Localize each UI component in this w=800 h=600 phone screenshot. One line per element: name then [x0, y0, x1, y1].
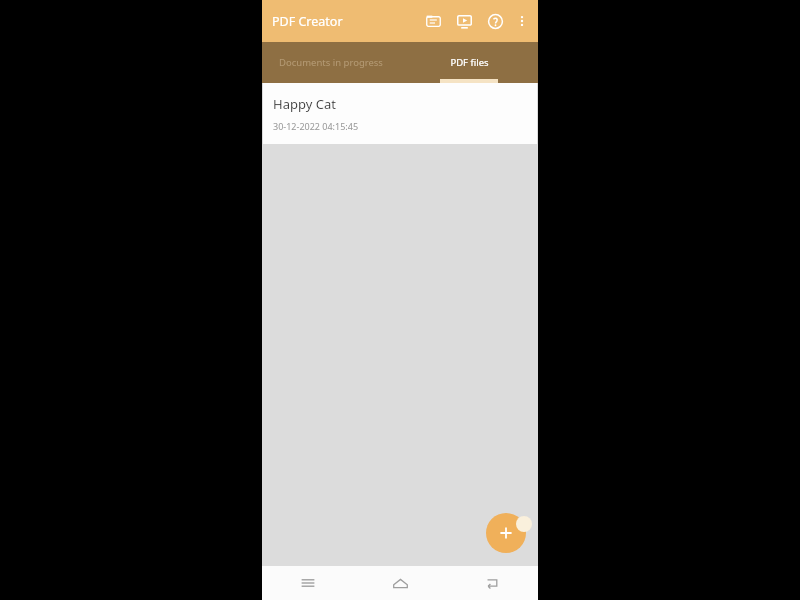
button[interactable]: Video tutorial — [451, 8, 477, 34]
staticText: 30-12-2022 04:15:45 — [273, 120, 359, 132]
button[interactable]: Home — [354, 566, 446, 600]
staticText: Documents in progress — [279, 56, 383, 69]
button[interactable]: Recent apps — [262, 566, 354, 600]
button[interactable]: Help — [482, 8, 508, 34]
button[interactable]: Create new PDF — [486, 513, 526, 553]
staticText: Happy Cat — [273, 95, 336, 113]
staticText: PDF files — [450, 56, 489, 69]
button[interactable]: PDF files — [400, 42, 538, 83]
button[interactable]: Happy Cat — [263, 83, 537, 144]
staticText: PDF Creator — [272, 13, 343, 30]
button[interactable]: Back — [446, 566, 538, 600]
button[interactable]: More options — [510, 9, 534, 33]
button[interactable]: PDF folder — [420, 8, 446, 34]
button[interactable]: Documents in progress — [262, 42, 400, 83]
